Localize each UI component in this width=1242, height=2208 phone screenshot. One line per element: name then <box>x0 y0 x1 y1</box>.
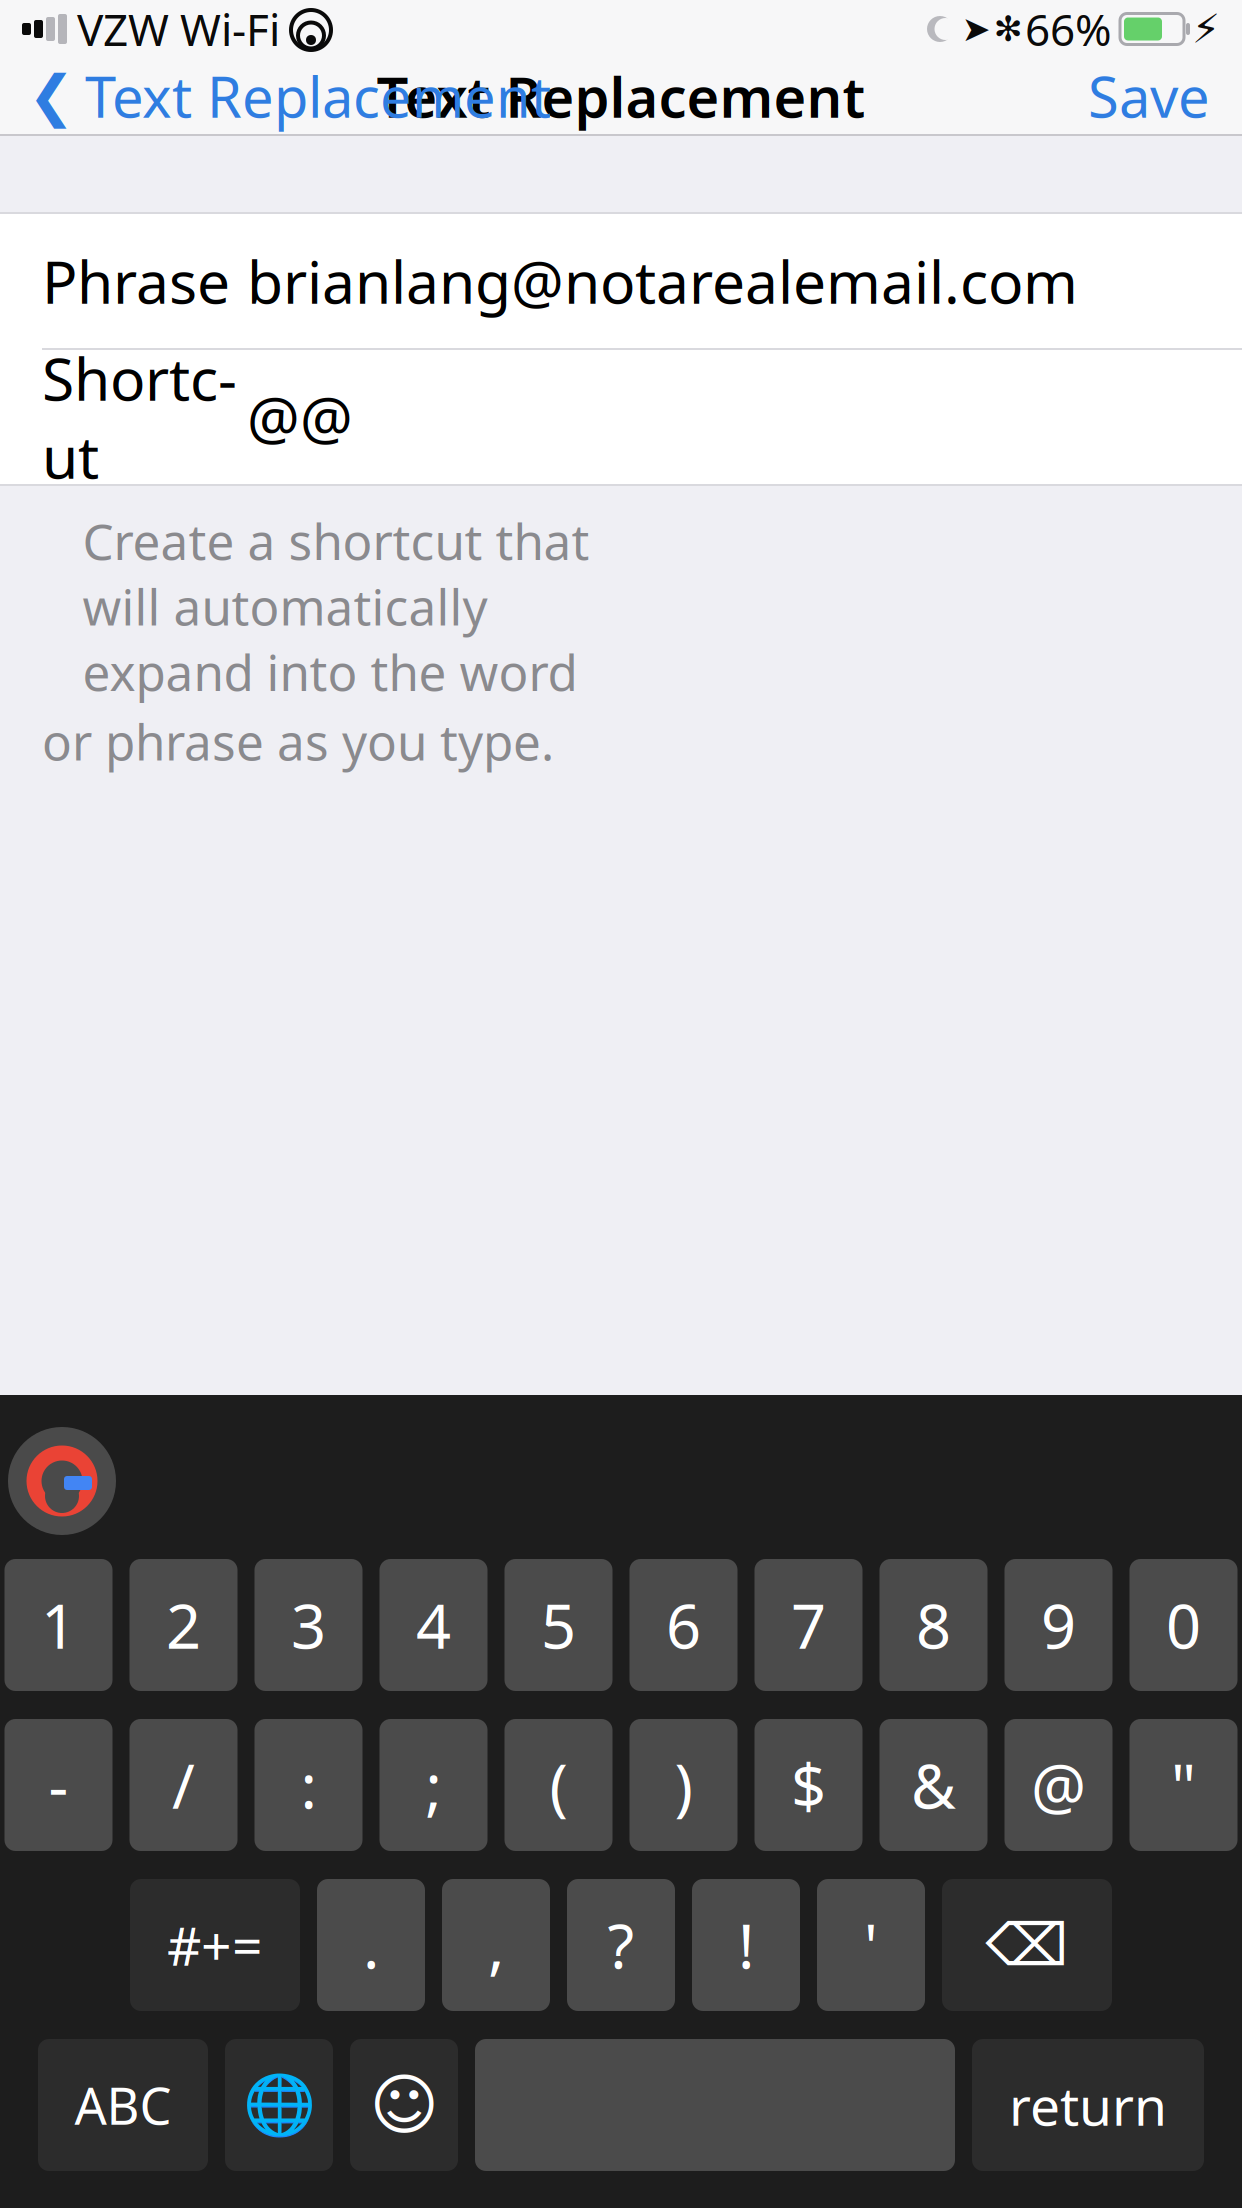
button[interactable]: Google <box>8 1427 116 1535</box>
button[interactable]: 4 <box>379 1559 487 1691</box>
staticText: @@ <box>247 378 353 456</box>
button[interactable]: Delete <box>942 1879 1112 2011</box>
staticText: Phrase <box>42 242 230 320</box>
staticText: 2 <box>166 1584 201 1666</box>
staticText: - <box>48 1744 68 1826</box>
staticText: ? <box>607 1904 634 1986</box>
button[interactable]: ' <box>817 1879 925 2011</box>
button[interactable]: ) <box>629 1719 737 1851</box>
button[interactable]: Phrase <box>0 214 1242 348</box>
staticText: ✻ <box>993 9 1022 49</box>
staticText: ( <box>549 1744 567 1826</box>
button[interactable]: 2 <box>129 1559 237 1691</box>
staticText: 3 <box>291 1584 326 1666</box>
staticText: #+= <box>167 1910 263 1980</box>
staticText: 6 <box>666 1584 701 1666</box>
staticText: & <box>911 1744 956 1826</box>
staticText: / <box>172 1744 195 1826</box>
button[interactable]: & <box>879 1719 987 1851</box>
staticText: . <box>363 1904 379 1986</box>
button[interactable]: 0 <box>1129 1559 1237 1691</box>
button[interactable]: . <box>317 1879 425 2011</box>
button[interactable]: #+= <box>130 1879 300 2011</box>
staticText: Text Replacement <box>376 59 865 133</box>
button[interactable]: Next keyboard <box>225 2039 333 2171</box>
button[interactable]: 1 <box>4 1559 112 1691</box>
button[interactable]: @ <box>1004 1719 1112 1851</box>
staticText: return <box>1009 2070 1167 2140</box>
staticText: ABC <box>74 2071 171 2139</box>
staticText: ❮ <box>28 64 75 128</box>
staticText: 66% <box>1025 0 1112 58</box>
button[interactable]: 5 <box>504 1559 612 1691</box>
button[interactable]: / <box>129 1719 237 1851</box>
button[interactable]: $ <box>754 1719 862 1851</box>
staticText: " <box>1171 1744 1196 1826</box>
button[interactable]: 7 <box>754 1559 862 1691</box>
staticText: Shortcut <box>42 339 237 495</box>
staticText: VZW Wi-Fi <box>77 0 280 58</box>
staticText: 4 <box>416 1584 451 1666</box>
button[interactable]: 6 <box>629 1559 737 1691</box>
staticText: ; <box>425 1744 441 1826</box>
staticText: 0 <box>1166 1584 1201 1666</box>
staticText: ⌫ <box>985 1912 1068 1978</box>
staticText: 9 <box>1041 1584 1076 1666</box>
button[interactable]: ( <box>504 1719 612 1851</box>
button[interactable]: , <box>442 1879 550 2011</box>
button[interactable]: 9 <box>1004 1559 1112 1691</box>
staticText: ) <box>674 1744 692 1826</box>
staticText: or phrase as you type. <box>42 708 554 774</box>
button[interactable]: ❮ <box>14 58 565 134</box>
staticText: ! <box>738 1904 754 1986</box>
button[interactable]: : <box>254 1719 362 1851</box>
staticText: Create a shortcut that will automaticall… <box>82 508 589 704</box>
staticText: ☺ <box>369 2067 438 2143</box>
staticText: , <box>488 1904 504 1986</box>
staticText: ' <box>864 1904 878 1986</box>
staticText: : <box>300 1744 316 1826</box>
staticText: $ <box>791 1744 826 1826</box>
button[interactable]: 3 <box>254 1559 362 1691</box>
button[interactable]: ABC <box>38 2039 208 2171</box>
staticText: 1 <box>41 1584 76 1666</box>
staticText: 5 <box>541 1584 576 1666</box>
staticText: 8 <box>916 1584 951 1666</box>
button[interactable]: Emoji <box>350 2039 458 2171</box>
staticText: brianlang@notarealemail.com <box>247 242 1078 320</box>
staticText: @ <box>1031 1744 1086 1826</box>
button[interactable]: 8 <box>879 1559 987 1691</box>
button[interactable]: " <box>1129 1719 1237 1851</box>
button[interactable]: Shortcut <box>0 350 1242 484</box>
button[interactable]: ? <box>567 1879 675 2011</box>
staticText: 🌐 <box>242 2071 315 2138</box>
button[interactable]: - <box>4 1719 112 1851</box>
button[interactable]: Save <box>1070 58 1228 134</box>
staticText: 7 <box>791 1584 826 1666</box>
staticText: Save <box>1088 59 1210 133</box>
button[interactable]: ; <box>379 1719 487 1851</box>
button[interactable]: ! <box>692 1879 800 2011</box>
staticText: Text Replacement <box>85 59 551 133</box>
staticText: ⚡︎ <box>1192 6 1220 52</box>
staticText: ➤ <box>961 9 990 49</box>
button[interactable]: return <box>972 2039 1204 2171</box>
